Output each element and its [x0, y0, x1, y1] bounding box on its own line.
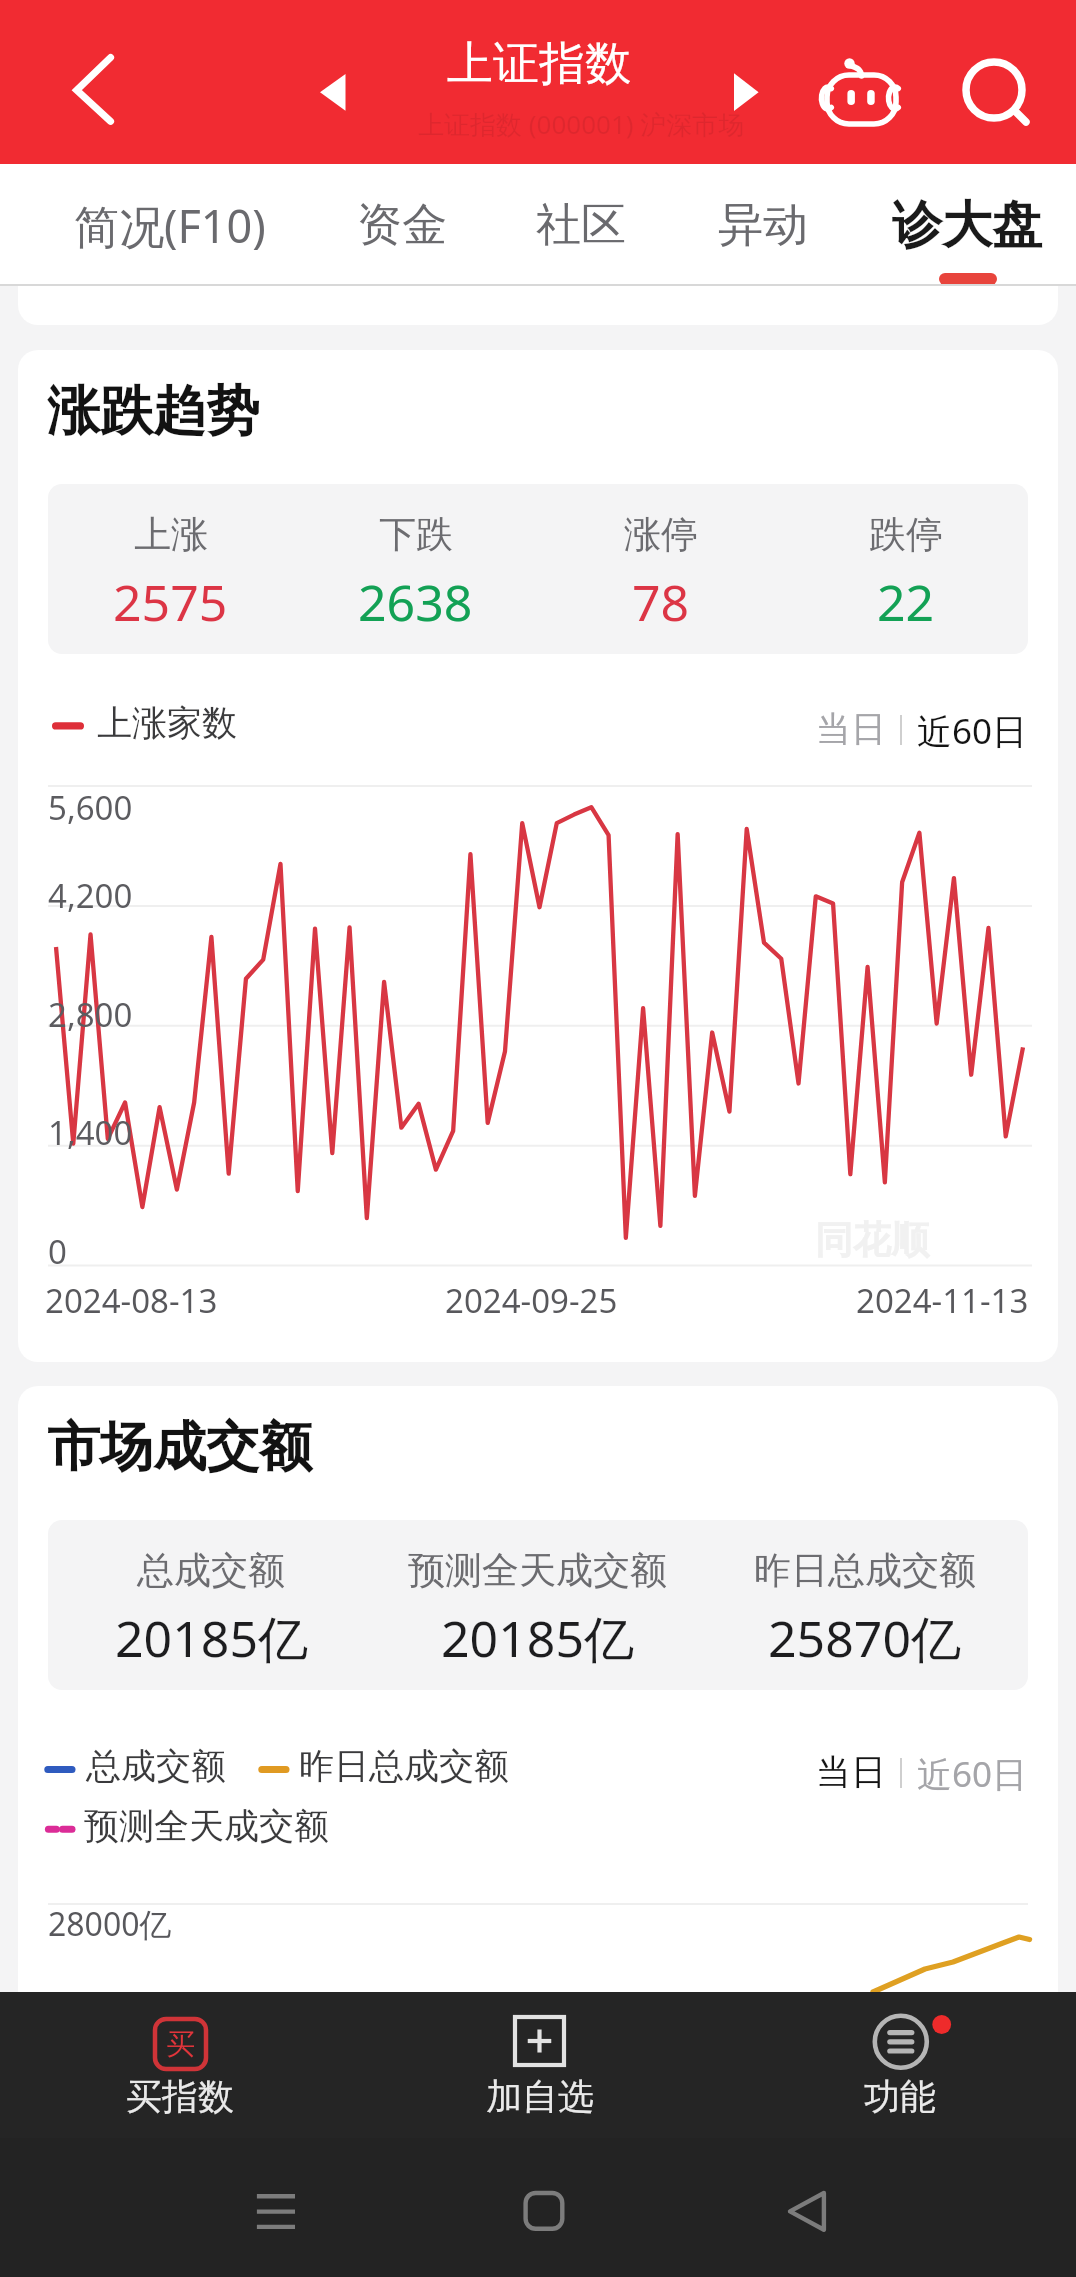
staticText: 20185亿 [115, 1604, 308, 1672]
button[interactable]: 功能 [740, 1992, 1070, 2138]
staticText: 简况(F10) [74, 195, 266, 256]
button[interactable]: 资金 [347, 164, 457, 286]
staticText: 22 [877, 568, 935, 636]
staticText: 昨日总成交额 [299, 1744, 509, 1788]
staticText: 当日 [816, 1750, 886, 1794]
staticText: 上证指数 (000001) 沪深市场 [418, 106, 745, 142]
button[interactable]: AI assistant [800, 30, 930, 145]
button[interactable]: Home [500, 2172, 588, 2240]
staticText: 78 [632, 568, 690, 636]
staticText: 当日 [816, 707, 886, 751]
staticText: 同花顺 [815, 1216, 929, 1264]
staticText: 功能 [864, 2074, 936, 2119]
button[interactable]: 近60日 [917, 707, 1033, 753]
staticText: 25870亿 [768, 1604, 961, 1672]
button[interactable]: 近60日 [917, 1750, 1033, 1796]
staticText: 近60日 [917, 1750, 1028, 1796]
button[interactable]: 简况(F10) [50, 164, 290, 286]
staticText: 涨停 [624, 511, 698, 558]
button[interactable]: 加自选 [380, 1992, 700, 2138]
button[interactable]: Next index [714, 62, 776, 124]
button[interactable]: 异动 [708, 164, 818, 286]
staticText: 5,600 [48, 785, 133, 830]
button[interactable]: 当日 [816, 1750, 888, 1796]
staticText: 买 [166, 2026, 195, 2063]
button[interactable]: Search [940, 34, 1050, 146]
staticText: 2024-08-13 [45, 1278, 218, 1323]
staticText: 涨跌趋势 [47, 378, 259, 445]
staticText: 总成交额 [86, 1744, 226, 1788]
staticText: 近60日 [917, 707, 1028, 753]
button[interactable]: 当日 [816, 707, 888, 753]
staticText: 2575 [113, 568, 228, 636]
staticText: 加自选 [486, 2074, 594, 2119]
button[interactable]: Back [766, 2172, 854, 2240]
staticText: 2638 [358, 568, 473, 636]
staticText: 2024-09-25 [445, 1278, 618, 1323]
staticText: 买指数 [126, 2074, 234, 2119]
button[interactable]: 社区 [526, 164, 636, 286]
staticText: 20185亿 [441, 1604, 634, 1672]
staticText: 下跌 [379, 511, 453, 558]
staticText: 社区 [536, 197, 626, 254]
staticText: 昨日总成交额 [754, 1547, 976, 1594]
staticText: 1,400 [48, 1110, 133, 1155]
staticText: 0 [48, 1229, 67, 1274]
staticText: 上证指数 [447, 35, 631, 93]
staticText: 28000亿 [48, 1902, 172, 1946]
staticText: 市场成交额 [47, 1414, 312, 1481]
staticText: 跌停 [869, 511, 943, 558]
staticText: 资金 [357, 197, 447, 254]
staticText: 2024-11-13 [856, 1278, 1029, 1323]
button[interactable]: Previous index [300, 62, 362, 124]
button[interactable]: Recent apps [232, 2172, 320, 2240]
staticText: 4,200 [48, 873, 133, 918]
staticText: 诊大盘 [892, 194, 1042, 257]
button[interactable]: 诊大盘 [877, 164, 1057, 286]
staticText: 预测全天成交额 [408, 1547, 667, 1594]
staticText: 上涨家数 [97, 701, 237, 745]
staticText: 总成交额 [137, 1547, 285, 1594]
staticText: 异动 [718, 197, 808, 254]
staticText: 预测全天成交额 [84, 1804, 329, 1848]
button[interactable]: 买 [20, 1992, 340, 2138]
button[interactable]: Back [40, 34, 150, 146]
staticText: 上涨 [134, 511, 208, 558]
staticText: 2,800 [48, 992, 133, 1037]
